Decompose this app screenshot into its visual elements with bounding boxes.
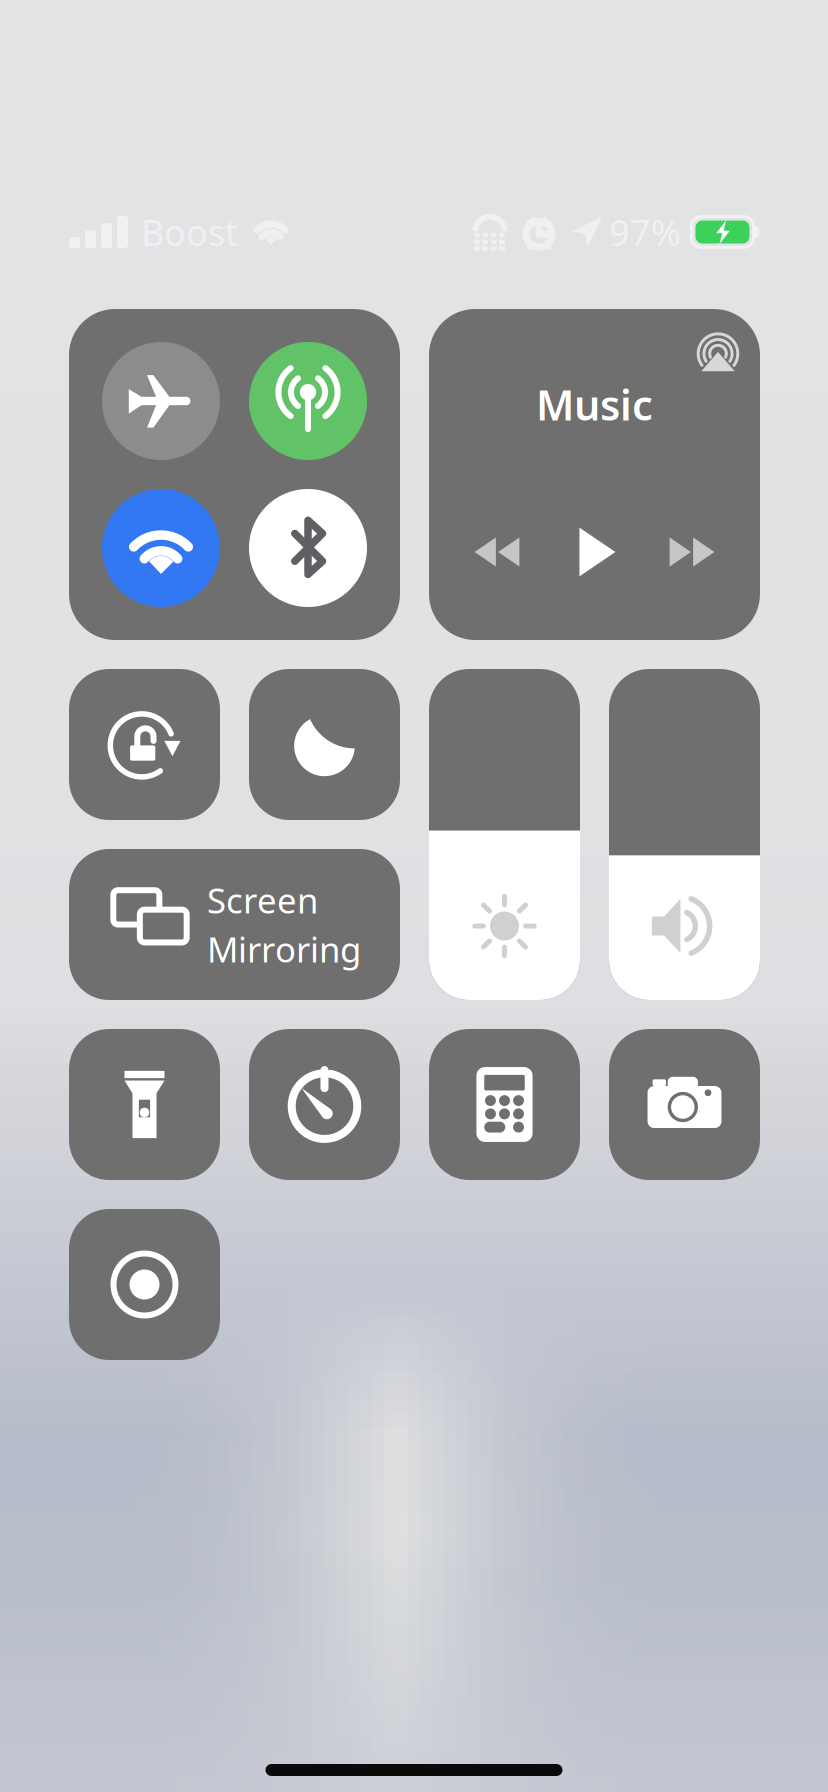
staticText: Screen — [207, 877, 318, 923]
button[interactable]: Cellular Data — [249, 342, 367, 460]
staticText: Music — [536, 377, 653, 432]
button[interactable]: Do Not Disturb — [249, 669, 400, 820]
button[interactable]: Volume — [609, 669, 760, 1000]
button[interactable]: Screen Recording — [69, 1209, 220, 1360]
button[interactable]: Fast Forward — [655, 522, 729, 582]
button[interactable]: AirPlay — [696, 309, 760, 373]
button[interactable]: Play — [557, 522, 631, 582]
button[interactable]: Rotation Lock — [69, 669, 220, 820]
button[interactable]: Screen — [69, 849, 400, 1000]
button[interactable]: Bluetooth — [249, 489, 367, 607]
staticText: Mirroring — [207, 926, 361, 972]
button[interactable]: Wi-Fi — [102, 489, 220, 607]
button[interactable]: Flashlight — [69, 1029, 220, 1180]
button[interactable]: Rewind — [460, 522, 534, 582]
staticText: 97% — [609, 208, 681, 256]
button[interactable]: Calculator — [429, 1029, 580, 1180]
staticText: Boost — [141, 208, 238, 256]
button[interactable]: Camera — [609, 1029, 760, 1180]
button[interactable]: Airplane Mode — [102, 342, 220, 460]
button[interactable]: Timer — [249, 1029, 400, 1180]
button[interactable]: Brightness — [429, 669, 580, 1000]
